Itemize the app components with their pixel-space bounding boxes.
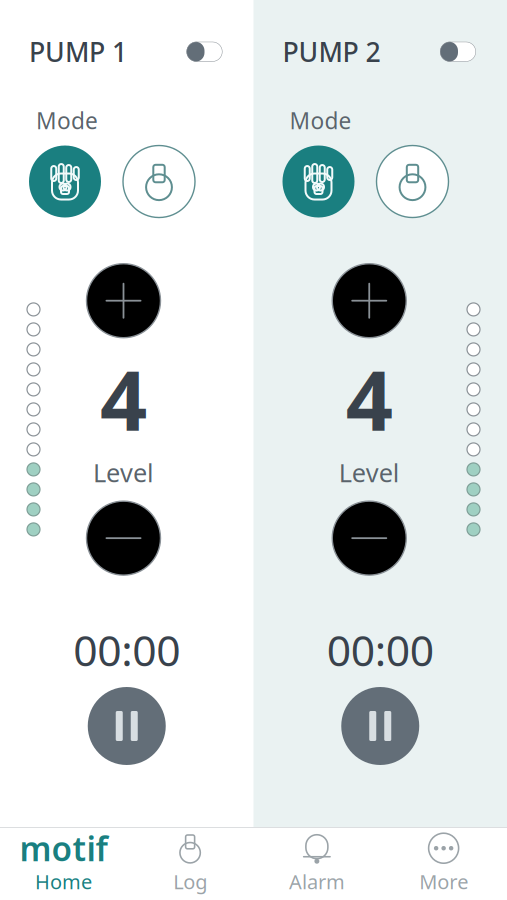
button[interactable]: Decrease level [86,501,160,575]
staticText: 00:00 [73,621,180,678]
button[interactable]: Alarm [253,825,380,900]
staticText: 4 [346,344,393,453]
button[interactable]: Express mode [123,145,195,217]
staticText: 00:00 [327,621,434,678]
button[interactable]: Increase level [332,264,406,338]
staticText: PUMP 1 [29,34,127,69]
staticText: Mode [36,105,98,135]
button[interactable]: Decrease level [332,501,406,575]
button[interactable]: Increase level [86,264,160,338]
staticText: More [419,868,468,895]
staticText: Log [173,868,207,895]
staticText: Alarm [289,868,345,895]
button[interactable]: Massage mode [29,145,101,217]
staticText: PUMP 2 [282,34,380,69]
button[interactable]: More [380,825,507,900]
button[interactable]: Log [127,825,254,900]
staticText: Level [339,455,400,489]
staticText: Level [93,455,154,489]
staticText: Mode [289,105,351,135]
button[interactable]: motif [0,825,127,900]
button[interactable]: Power [186,42,222,62]
staticText: Home [35,868,92,895]
button[interactable]: Massage mode [282,145,354,217]
staticText: motif [19,826,107,870]
button[interactable]: Power [440,42,476,62]
button[interactable]: Pause [341,687,419,765]
staticText: 4 [100,344,147,453]
button[interactable]: Pause [88,687,166,765]
button[interactable]: Express mode [376,145,448,217]
